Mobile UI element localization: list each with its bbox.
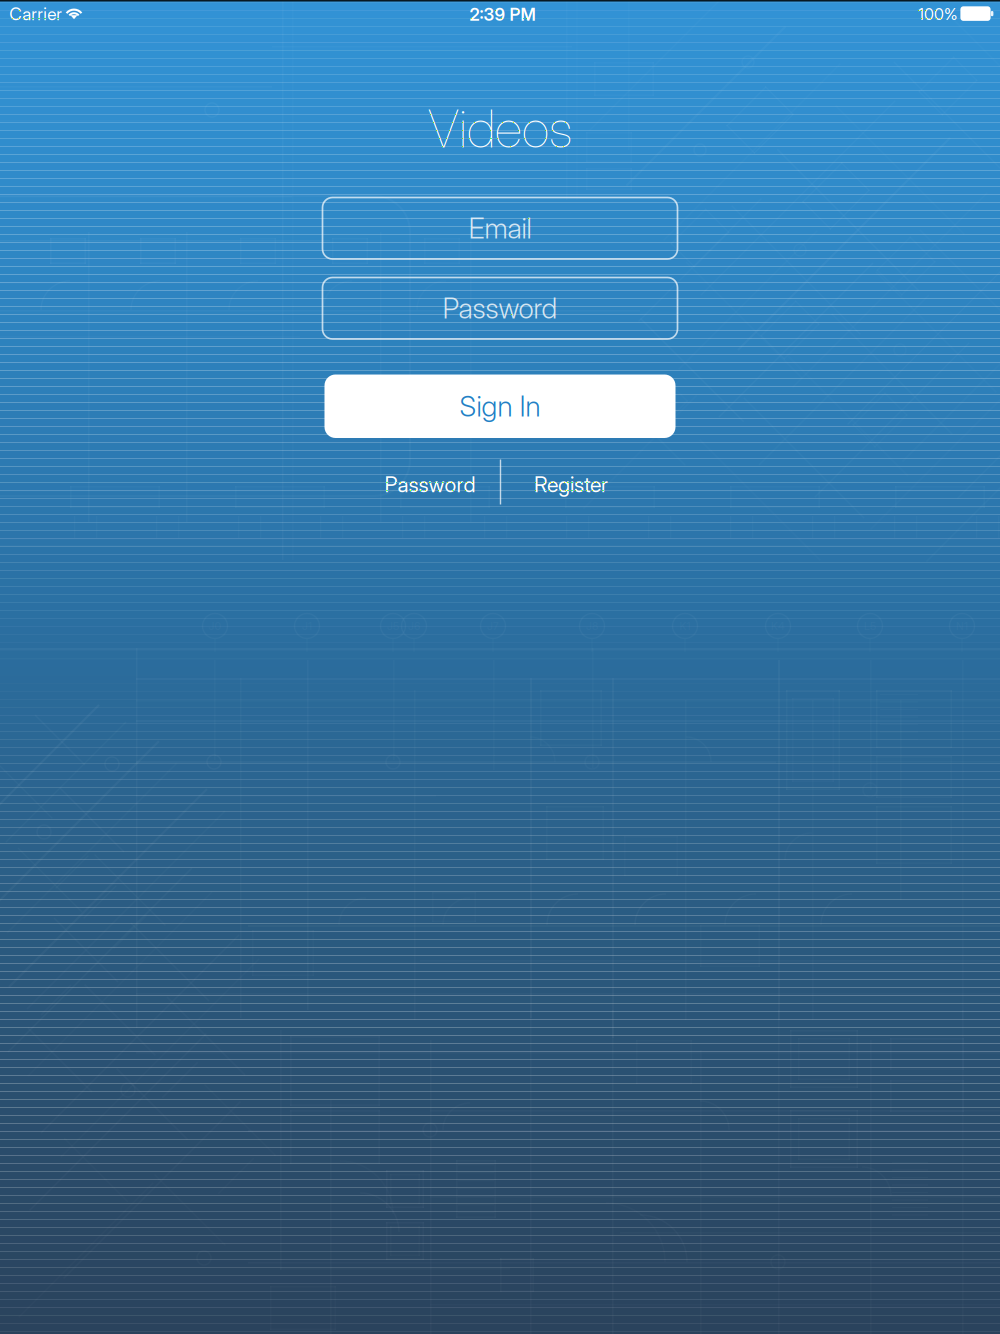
staticText: Password — [384, 472, 475, 497]
button[interactable]: Email — [322, 197, 677, 259]
staticText: Password — [442, 291, 557, 325]
staticText: Carrier — [9, 3, 62, 24]
staticText: Register — [534, 472, 608, 497]
staticText: Email — [468, 211, 531, 245]
staticText: 100% — [918, 4, 958, 24]
staticText: Sign In — [459, 389, 540, 423]
button[interactable]: Sign In — [324, 374, 675, 438]
button[interactable]: Password — [355, 461, 505, 507]
button[interactable]: Password — [322, 277, 677, 339]
staticText: 2:39 PM — [469, 4, 535, 25]
staticText: Videos — [428, 97, 572, 160]
button[interactable]: Register — [496, 461, 646, 507]
